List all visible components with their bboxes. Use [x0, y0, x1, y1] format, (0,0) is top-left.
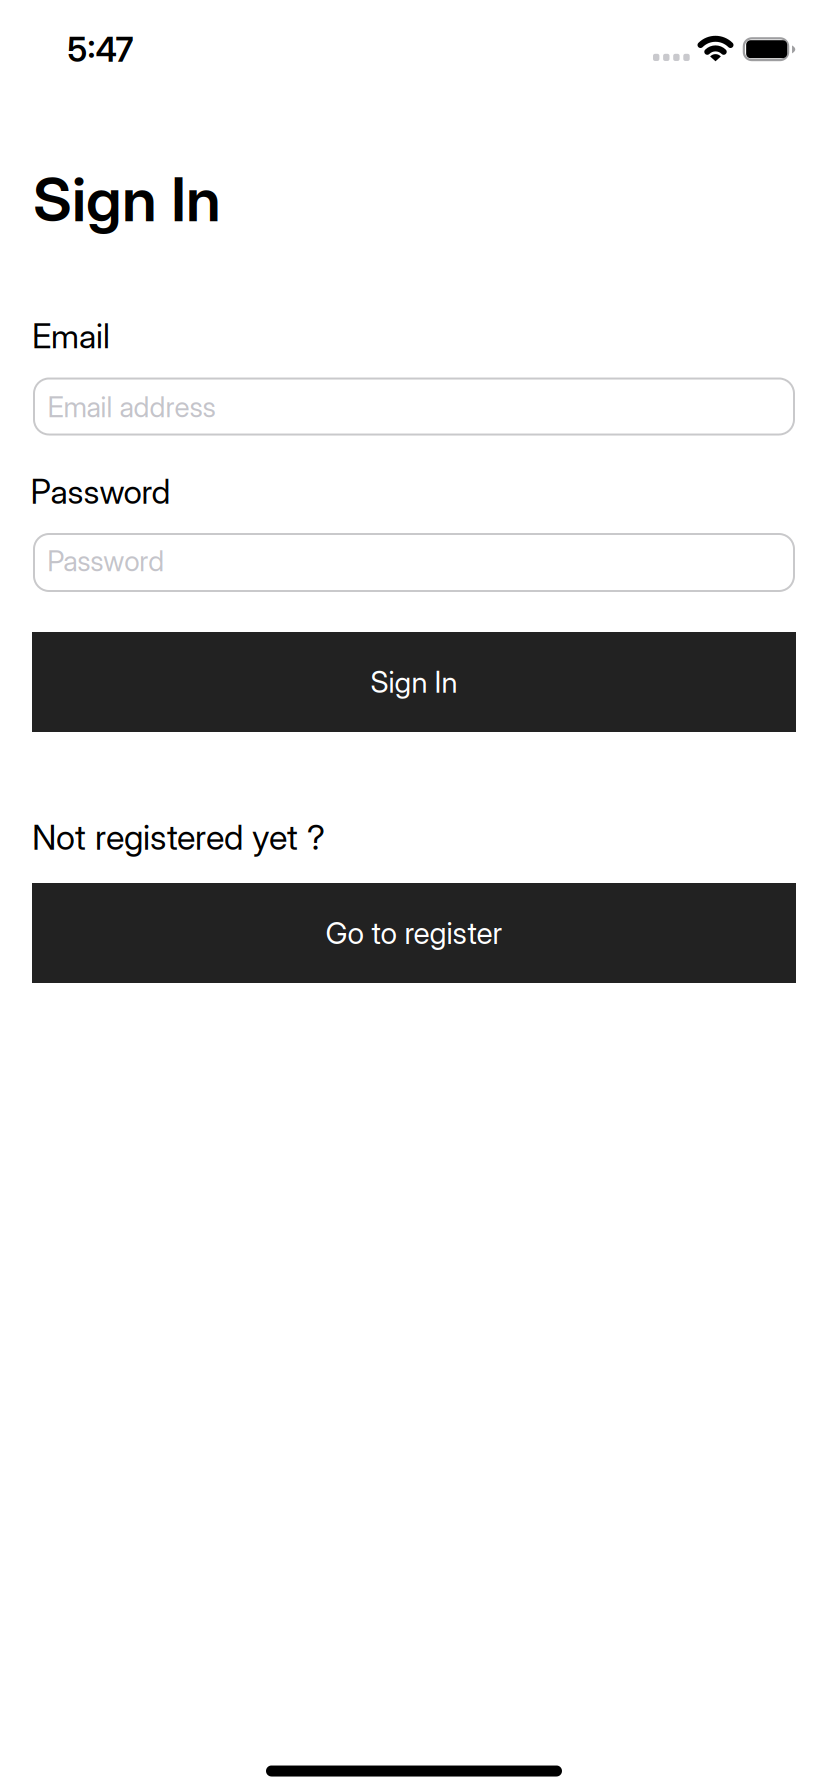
staticText: Sign In [33, 162, 221, 236]
button[interactable]: Go to register [32, 883, 796, 983]
staticText: Password [30, 471, 170, 512]
button[interactable]: Password [33, 533, 795, 592]
button[interactable]: Sign In [32, 632, 796, 732]
staticText: Sign In [370, 664, 457, 700]
button[interactable]: Email address [33, 377, 795, 435]
staticText: Password [47, 544, 164, 578]
staticText: Not registered yet ? [32, 816, 325, 858]
staticText: Email [32, 316, 110, 356]
staticText: Go to register [325, 915, 502, 951]
staticText: Email address [47, 390, 215, 424]
staticText: 5:47 [67, 29, 133, 70]
